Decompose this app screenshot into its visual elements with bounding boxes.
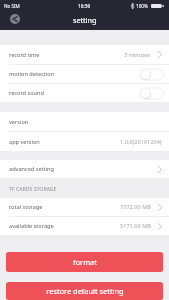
button[interactable]: restore default setting xyxy=(6,282,163,300)
staticText: record time xyxy=(9,51,40,59)
staticText: version xyxy=(9,118,29,126)
button[interactable]: record time xyxy=(0,45,169,64)
staticText: 100% xyxy=(136,3,148,9)
button[interactable]: advanced setting xyxy=(0,160,169,178)
staticText: total storage xyxy=(9,203,43,211)
staticText: No SIM xyxy=(4,3,20,9)
button[interactable]: Toggle record sound xyxy=(140,88,164,99)
button[interactable]: Back xyxy=(10,14,20,24)
staticText: record sound xyxy=(9,89,44,97)
staticText: setting xyxy=(73,15,97,25)
staticText: advanced setting xyxy=(9,165,54,173)
staticText: 1.0.0(20191204) xyxy=(120,138,162,146)
staticText: available storage xyxy=(9,222,54,230)
button[interactable]: record sound xyxy=(0,84,169,102)
staticText: 16:59 xyxy=(78,3,91,10)
button[interactable]: Toggle motion detection xyxy=(140,69,164,80)
button[interactable]: motion detection xyxy=(0,65,169,83)
staticText: 3 minutes xyxy=(124,51,151,59)
staticText: 5171.69 MB xyxy=(120,222,151,230)
button[interactable]: total storage xyxy=(0,198,169,216)
button[interactable]: app version xyxy=(0,132,169,151)
button[interactable]: available storage xyxy=(0,217,169,235)
staticText: TF CARDS STORAGE xyxy=(9,185,57,192)
staticText: app version xyxy=(9,138,40,146)
staticText: 7572.00 MB xyxy=(120,203,151,211)
button[interactable]: version xyxy=(0,112,169,131)
staticText: restore default setting xyxy=(46,286,124,296)
staticText: motion detection xyxy=(9,70,55,78)
button[interactable]: format xyxy=(6,252,163,272)
staticText: format xyxy=(73,257,97,267)
